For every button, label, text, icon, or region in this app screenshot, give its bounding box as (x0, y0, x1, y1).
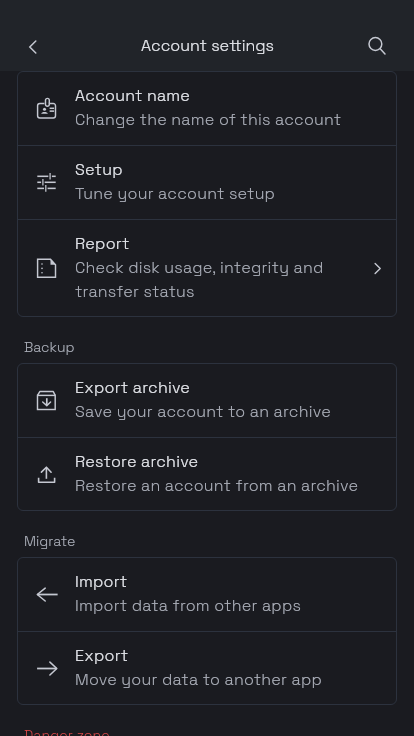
staticText: Migrate (24, 532, 76, 550)
staticText: Backup (24, 338, 75, 356)
staticText: Account settings (141, 32, 274, 56)
staticText: Restore archive Restore an account from … (75, 448, 359, 496)
staticText: Account name Change the name of this acc… (75, 82, 342, 130)
button[interactable]: Back (11, 25, 55, 69)
button[interactable]: Setup Tune your account setup (17, 145, 397, 219)
staticText: Report Check disk usage, integrity and t… (75, 230, 324, 302)
staticText: Import Import data from other apps (75, 568, 302, 616)
button[interactable]: Restore archive Restore an account from … (17, 437, 397, 511)
button[interactable]: Search (355, 24, 399, 68)
button[interactable]: Export Move your data to another app (17, 631, 397, 705)
staticText: Export Move your data to another app (75, 642, 323, 690)
button[interactable]: Export archive Save your account to an a… (17, 363, 397, 437)
staticText: Setup Tune your account setup (75, 156, 276, 204)
staticText: Export archive Save your account to an a… (75, 374, 331, 422)
button[interactable]: Account name Change the name of this acc… (17, 71, 397, 145)
button[interactable]: Report Check disk usage, integrity and t… (17, 219, 397, 317)
button[interactable]: Import Import data from other apps (17, 557, 397, 631)
staticText: Danger zone (24, 726, 110, 736)
